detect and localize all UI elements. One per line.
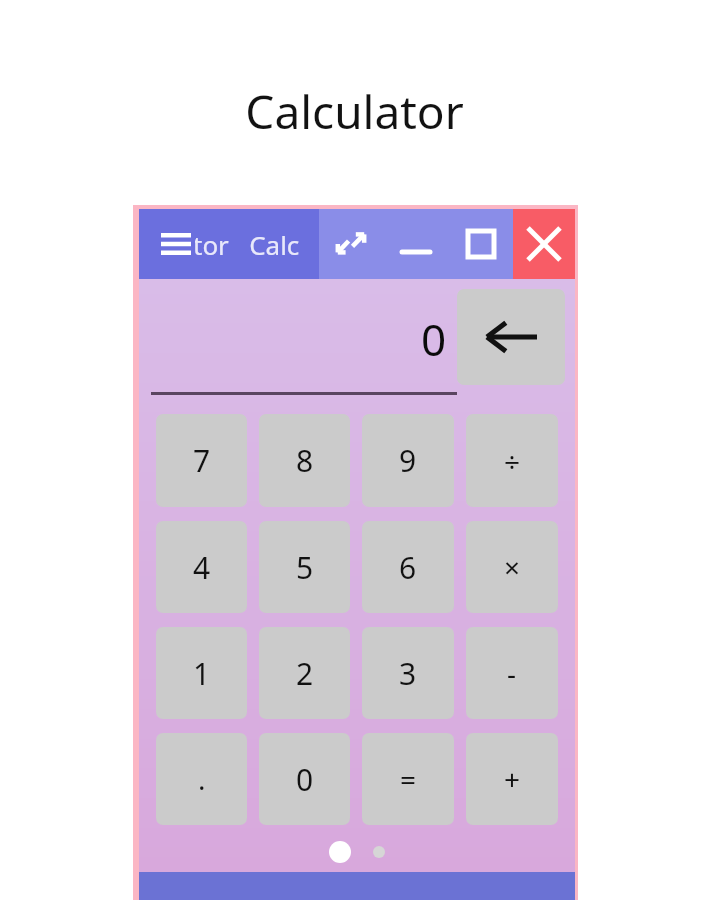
button[interactable]: 5 (259, 521, 350, 613)
button[interactable]: 1 (156, 627, 247, 719)
button[interactable]: = (362, 733, 454, 825)
staticText: . (198, 760, 206, 798)
button[interactable]: . (156, 733, 247, 825)
button[interactable]: 4 (156, 521, 247, 613)
button[interactable]: 9 (362, 414, 454, 507)
button[interactable]: Minimize (383, 209, 448, 279)
button[interactable]: 2 (259, 627, 350, 719)
staticText: = (400, 760, 417, 798)
button[interactable]: Backspace (457, 289, 565, 385)
button[interactable]: 3 (362, 627, 454, 719)
staticText: × (504, 548, 521, 586)
staticText: tor Calc (195, 227, 300, 262)
staticText: 4 (193, 547, 211, 588)
button[interactable]: 8 (259, 414, 350, 507)
button[interactable]: Menu (157, 225, 195, 263)
button[interactable]: 6 (362, 521, 454, 613)
button[interactable] (329, 841, 351, 863)
button[interactable]: - (466, 627, 558, 719)
staticText: 8 (296, 440, 314, 481)
staticText: 2 (296, 653, 314, 694)
button[interactable]: 0 (259, 733, 350, 825)
button[interactable] (373, 846, 385, 858)
staticText: 9 (399, 440, 417, 481)
button[interactable]: Maximize (448, 209, 513, 279)
staticText: ÷ (504, 442, 521, 480)
staticText: 0 (296, 759, 314, 800)
button[interactable]: 7 (156, 414, 247, 507)
staticText: 5 (296, 547, 314, 588)
staticText: - (507, 654, 517, 692)
button[interactable]: + (466, 733, 558, 825)
staticText: 3 (399, 653, 417, 694)
button[interactable]: Restore (319, 209, 383, 279)
staticText: + (504, 760, 521, 798)
staticText: 1 (193, 653, 211, 694)
staticText: 0 (421, 309, 447, 369)
button[interactable]: ÷ (466, 414, 558, 507)
staticText: 7 (193, 440, 211, 481)
button[interactable]: Close (513, 209, 575, 279)
staticText: Calculator (245, 80, 464, 143)
button[interactable]: × (466, 521, 558, 613)
staticText: 6 (399, 547, 417, 588)
